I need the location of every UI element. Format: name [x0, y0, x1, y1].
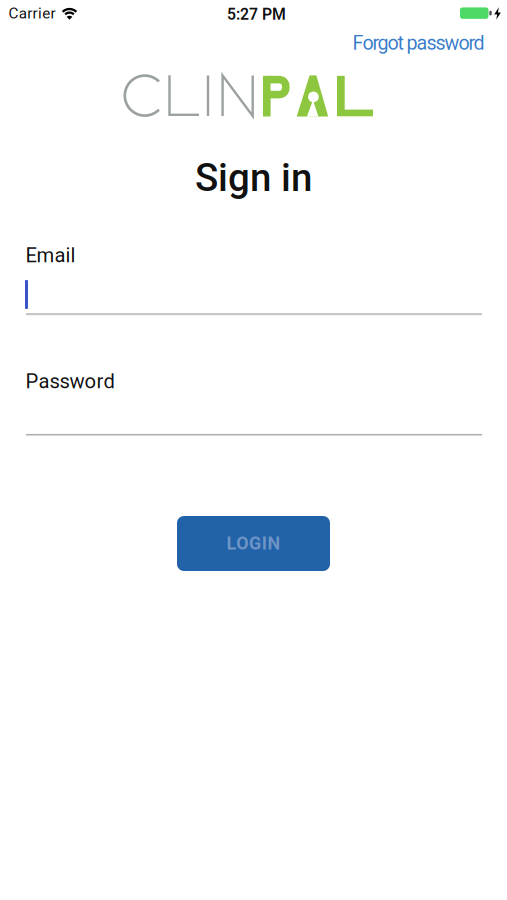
staticText: Password	[25, 369, 114, 393]
textField[interactable]: Email	[26, 278, 482, 308]
staticText: Email	[25, 244, 75, 267]
button[interactable]: LOGIN	[177, 516, 330, 571]
staticText: Sign in	[195, 155, 312, 200]
button[interactable]: Forgot password	[352, 31, 484, 54]
staticText: LOGIN	[226, 533, 281, 554]
staticText: 5:27 PM	[227, 5, 286, 24]
staticText: Forgot password	[352, 31, 484, 54]
staticText: Carrier	[8, 4, 56, 22]
